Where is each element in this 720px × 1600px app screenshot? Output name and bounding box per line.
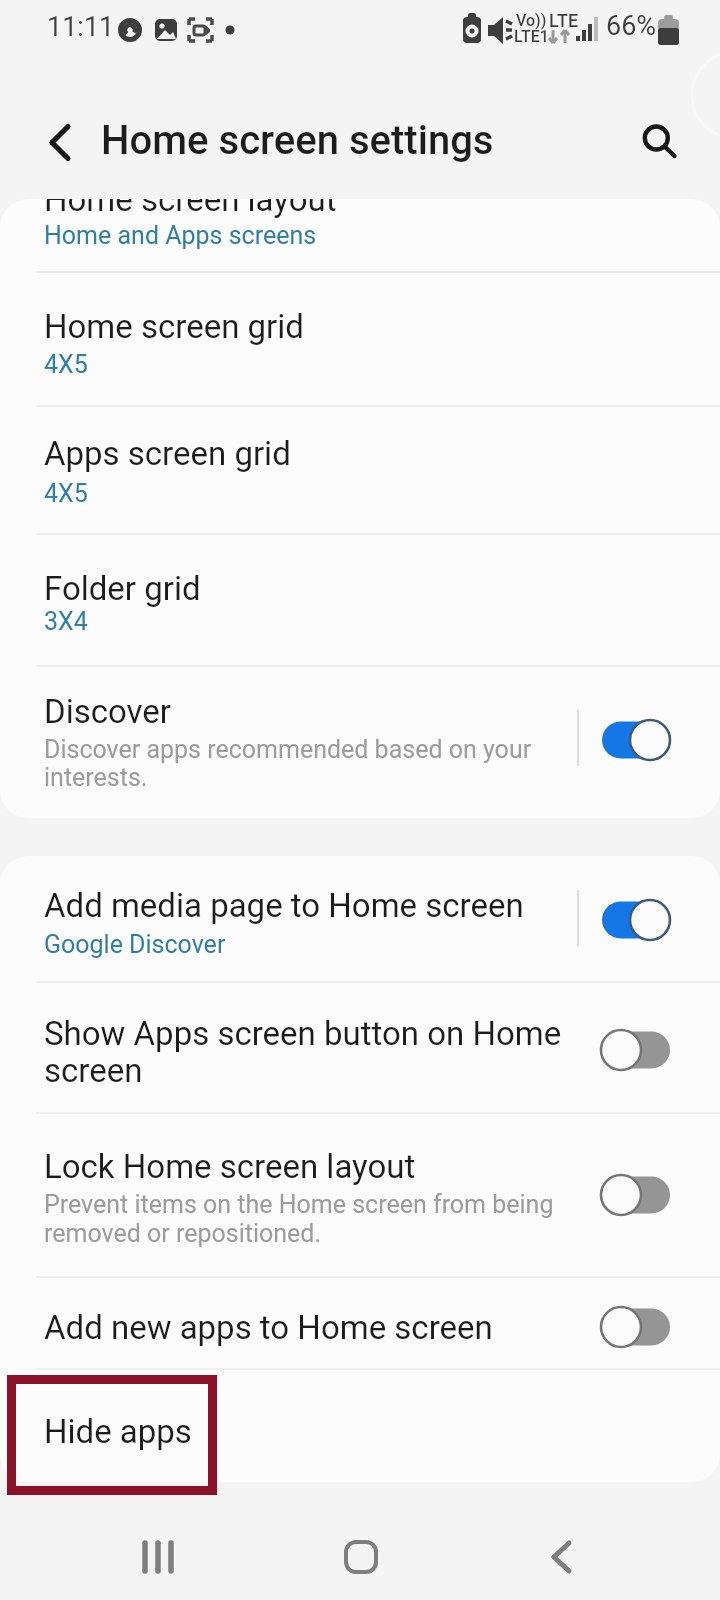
button[interactable]: Search: [628, 110, 686, 168]
button[interactable]: [0, 1372, 720, 1482]
staticText: Add new apps to Home screen: [44, 1308, 493, 1347]
button[interactable]: Home: [301, 1497, 421, 1600]
staticText: Lock Home screen layout: [44, 1147, 416, 1186]
staticText: 4X5: [44, 350, 88, 379]
staticText: 11:11: [47, 11, 115, 43]
button[interactable]: Back: [501, 1497, 621, 1600]
staticText: Home screen grid: [44, 307, 304, 346]
button[interactable]: Switch off: [592, 1291, 692, 1363]
button[interactable]: Switch on: [592, 704, 692, 776]
staticText: Vo)): [516, 11, 547, 30]
button[interactable]: [0, 1280, 720, 1370]
button[interactable]: Switch off: [592, 1014, 692, 1086]
staticText: Home screen settings: [101, 117, 494, 164]
button[interactable]: [0, 537, 720, 667]
button[interactable]: [0, 669, 720, 818]
button[interactable]: [0, 275, 720, 407]
staticText: Folder grid: [44, 569, 201, 608]
button[interactable]: [0, 856, 720, 983]
button[interactable]: [0, 409, 720, 535]
staticText: LTE: [549, 10, 579, 31]
staticText: 3X4: [44, 607, 88, 636]
staticText: Discover apps recommended based on your: [44, 735, 532, 764]
button[interactable]: Navigate up: [26, 113, 88, 175]
button[interactable]: Switch off: [592, 1159, 692, 1231]
button[interactable]: Recent apps: [98, 1497, 218, 1600]
button[interactable]: Switch on: [592, 884, 692, 956]
staticText: removed or repositioned.: [44, 1219, 321, 1248]
staticText: Home screen layout: [44, 199, 337, 219]
staticText: Show Apps screen button on Home: [44, 1014, 562, 1053]
staticText: 66%: [606, 10, 657, 42]
staticText: Apps screen grid: [44, 434, 291, 473]
staticText: Hide apps: [44, 1412, 192, 1451]
staticText: Add media page to Home screen: [44, 886, 524, 925]
staticText: 4X5: [44, 479, 88, 508]
staticText: Discover: [44, 692, 172, 731]
staticText: Google Discover: [44, 930, 226, 959]
staticText: interests.: [44, 763, 148, 792]
staticText: LTE1: [514, 27, 549, 46]
staticText: Home and Apps screens: [44, 221, 317, 250]
staticText: screen: [44, 1051, 143, 1090]
button[interactable]: [0, 199, 720, 273]
staticText: Prevent items on the Home screen from be…: [44, 1190, 554, 1219]
